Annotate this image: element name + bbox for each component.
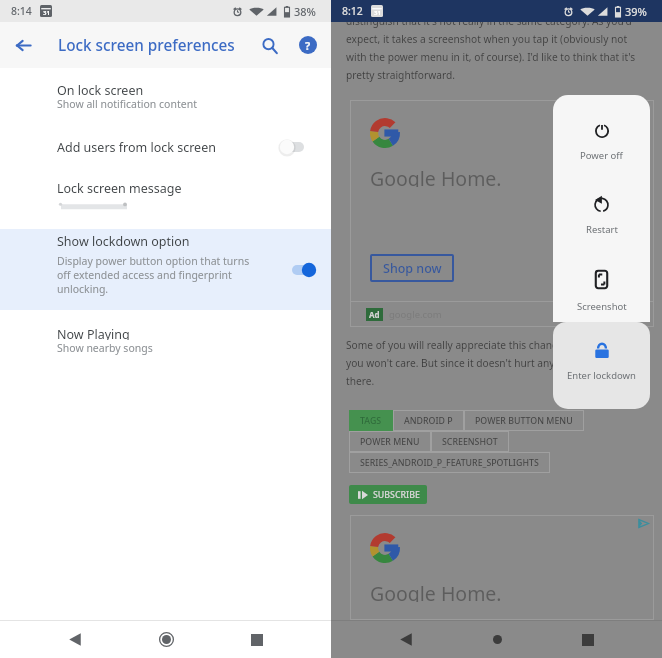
button[interactable]: SUBSCRIBE	[349, 485, 427, 504]
button[interactable]: Back	[378, 621, 434, 658]
staticText: Display power button option that turns o…	[57, 254, 250, 296]
button[interactable]	[289, 261, 317, 279]
staticText: ?	[305, 38, 311, 53]
staticText: 39%	[625, 4, 647, 19]
staticText: On lock screen	[57, 82, 144, 96]
button[interactable]: Recents	[229, 621, 285, 658]
staticText: Now Playing	[57, 326, 130, 340]
staticText: Lock screen message	[57, 180, 182, 197]
staticText: Shop now	[383, 260, 442, 277]
button[interactable]: Screenshot	[553, 268, 650, 322]
staticText: 8:12	[342, 4, 363, 18]
staticText: 31	[43, 9, 50, 17]
staticText: Restart	[586, 223, 618, 236]
staticText: Lock screen preferences	[58, 35, 235, 56]
staticText: google.com	[389, 308, 442, 321]
staticText: POWER MENU	[360, 436, 420, 448]
button[interactable]: Show lockdown option	[0, 229, 331, 310]
button[interactable]: Search	[250, 26, 288, 64]
button[interactable]: Now Playing	[0, 326, 331, 355]
staticText: 31	[374, 9, 381, 17]
staticText: Google Home.	[370, 165, 502, 187]
staticText: Ad	[369, 309, 380, 320]
staticText: 8:14	[11, 4, 32, 18]
staticText: SCREENSHOT	[442, 436, 498, 448]
button[interactable]: ANDROID P	[393, 410, 464, 431]
button[interactable]: Help	[289, 26, 327, 64]
button[interactable]: POWER MENU	[349, 431, 431, 452]
button[interactable]: Back	[47, 621, 103, 658]
staticText: Screenshot	[577, 300, 627, 313]
staticText: SERIES_ANDROID_P_FEATURE_SPOTLIGHTS	[360, 457, 539, 469]
staticText: Show all notification content	[57, 97, 197, 111]
staticText: Add users from lock screen	[57, 139, 279, 156]
button[interactable]: Home	[469, 621, 525, 658]
staticText: 38%	[294, 4, 316, 19]
staticText: distinguish that it's not really in the …	[346, 11, 636, 83]
staticText: Power off	[580, 149, 623, 162]
button[interactable]: Add users from lock screen	[0, 131, 331, 163]
staticText: POWER BUTTON MENU	[475, 415, 573, 427]
button[interactable]: Power off	[553, 118, 650, 193]
staticText: TAGS	[360, 415, 382, 427]
button[interactable]: SERIES_ANDROID_P_FEATURE_SPOTLIGHTS	[349, 452, 550, 473]
button[interactable]: Restart	[553, 193, 650, 268]
button[interactable]	[279, 138, 307, 156]
button[interactable]: TAGS	[349, 410, 393, 431]
staticText: Google Home.	[370, 580, 502, 602]
staticText: Enter lockdown	[567, 369, 636, 382]
button[interactable]: On lock screen	[0, 82, 331, 111]
button[interactable]: Shop now	[370, 254, 454, 282]
staticText: Show lockdown option	[57, 233, 190, 250]
staticText: Some of you will really appreciate this …	[346, 335, 609, 389]
button[interactable]: POWER BUTTON MENU	[464, 410, 584, 431]
button[interactable]: Back	[4, 26, 42, 64]
staticText: ANDROID P	[404, 415, 453, 427]
button[interactable]: SCREENSHOT	[431, 431, 509, 452]
staticText: Show nearby songs	[57, 341, 153, 355]
button[interactable]: Recents	[560, 621, 616, 658]
staticText: SUBSCRIBE	[373, 489, 420, 501]
button[interactable]: Lock screen message	[0, 180, 331, 210]
button[interactable]: Home	[138, 621, 194, 658]
button[interactable]: Enter lockdown	[553, 322, 650, 409]
